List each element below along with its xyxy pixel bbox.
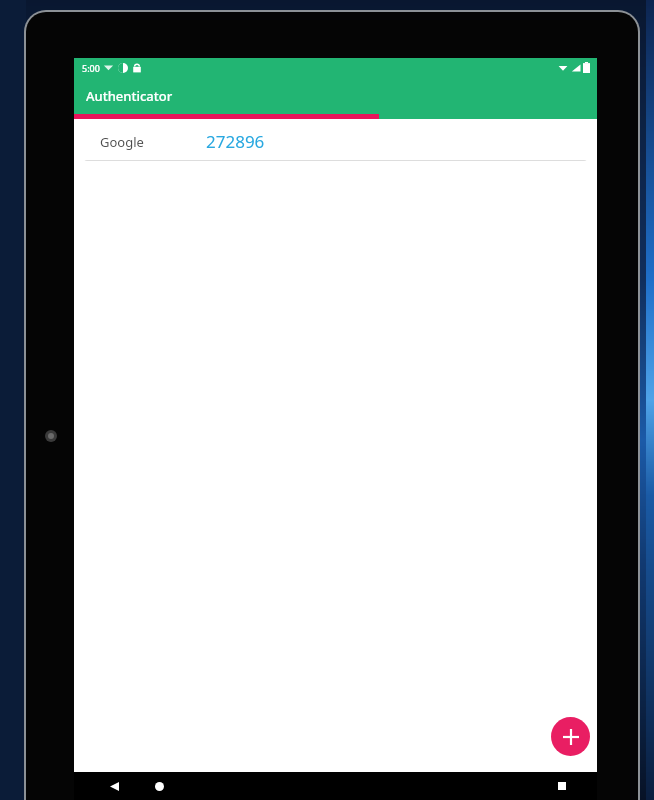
button[interactable]: Recent apps bbox=[549, 773, 575, 799]
staticText: Google bbox=[100, 133, 144, 151]
button[interactable]: Home bbox=[146, 773, 172, 799]
staticText: 5:00 bbox=[82, 62, 100, 74]
staticText: Authenticator bbox=[86, 87, 173, 105]
button[interactable]: Add account bbox=[551, 717, 590, 756]
staticText: 272896 bbox=[206, 130, 265, 153]
button[interactable]: Google bbox=[84, 122, 587, 161]
button[interactable]: Back bbox=[101, 773, 127, 799]
